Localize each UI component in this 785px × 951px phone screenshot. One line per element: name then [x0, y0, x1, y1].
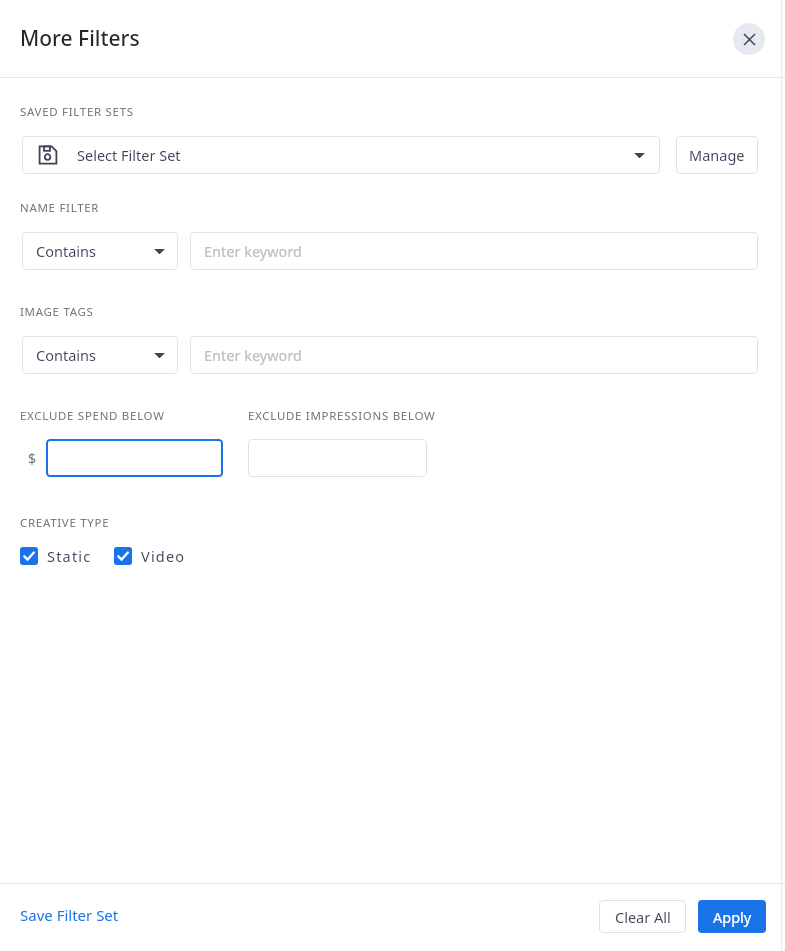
- staticText: Static: [47, 546, 92, 566]
- button[interactable]: Contains: [22, 336, 178, 374]
- button[interactable]: Manage: [676, 136, 758, 174]
- button[interactable]: Contains: [22, 232, 178, 270]
- staticText: CREATIVE TYPE: [20, 515, 110, 531]
- button[interactable]: Video: [114, 546, 186, 566]
- button[interactable]: Exclude impressions below: [248, 439, 427, 477]
- staticText: SAVED FILTER SETS: [20, 104, 134, 120]
- staticText: $: [28, 449, 37, 468]
- staticText: IMAGE TAGS: [20, 304, 94, 320]
- button[interactable]: Static: [20, 546, 92, 566]
- staticText: Save Filter Set: [20, 905, 119, 925]
- staticText: Manage: [689, 145, 745, 165]
- button[interactable]: Apply: [698, 900, 766, 933]
- button[interactable]: Enter keyword: [190, 336, 758, 374]
- staticText: Apply: [713, 907, 752, 927]
- staticText: Contains: [36, 241, 96, 261]
- button[interactable]: Enter keyword: [190, 232, 758, 270]
- staticText: Enter keyword: [204, 345, 303, 365]
- staticText: Clear All: [615, 907, 671, 927]
- button[interactable]: Close: [733, 23, 765, 55]
- staticText: Video: [141, 546, 186, 566]
- button[interactable]: Select Filter Set: [22, 136, 660, 174]
- staticText: EXCLUDE IMPRESSIONS BELOW: [248, 408, 436, 424]
- button[interactable]: Save Filter Set: [20, 905, 119, 925]
- staticText: Enter keyword: [204, 241, 303, 261]
- staticText: EXCLUDE SPEND BELOW: [20, 408, 165, 424]
- staticText: Select Filter Set: [77, 145, 181, 165]
- staticText: Contains: [36, 345, 96, 365]
- staticText: More Filters: [20, 24, 140, 53]
- button[interactable]: Exclude spend below: [46, 439, 223, 477]
- button[interactable]: Clear All: [599, 900, 686, 933]
- staticText: NAME FILTER: [20, 200, 100, 216]
